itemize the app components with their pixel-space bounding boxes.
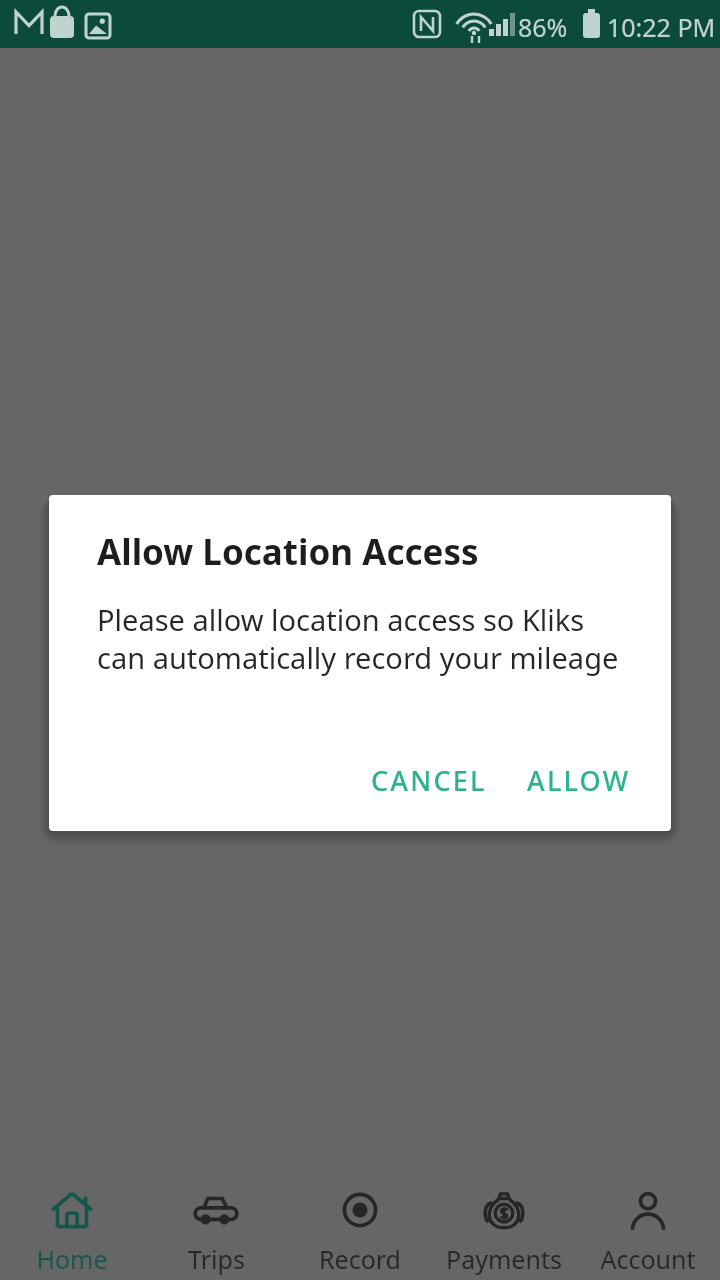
button[interactable]: Record [288,1165,432,1280]
button[interactable]: Trips [144,1165,288,1280]
staticText: Home [36,1242,108,1276]
staticText: CANCEL [371,762,487,799]
button[interactable]: Home [0,1165,144,1280]
staticText: 10:22 PM [607,10,716,44]
staticText: Record [319,1242,401,1276]
button[interactable]: Account [576,1165,720,1280]
button[interactable]: ALLOW [511,748,647,813]
staticText: 86% [518,10,568,44]
staticText: Trips [188,1242,245,1276]
staticText: Please allow location access so Kliks ca… [97,600,633,677]
staticText: Account [600,1242,696,1276]
staticText: Allow Location Access [97,528,479,576]
staticText: ALLOW [527,762,631,799]
button[interactable]: CANCEL [355,748,503,813]
staticText: Payments [446,1242,562,1276]
button[interactable]: Payments [432,1165,576,1280]
